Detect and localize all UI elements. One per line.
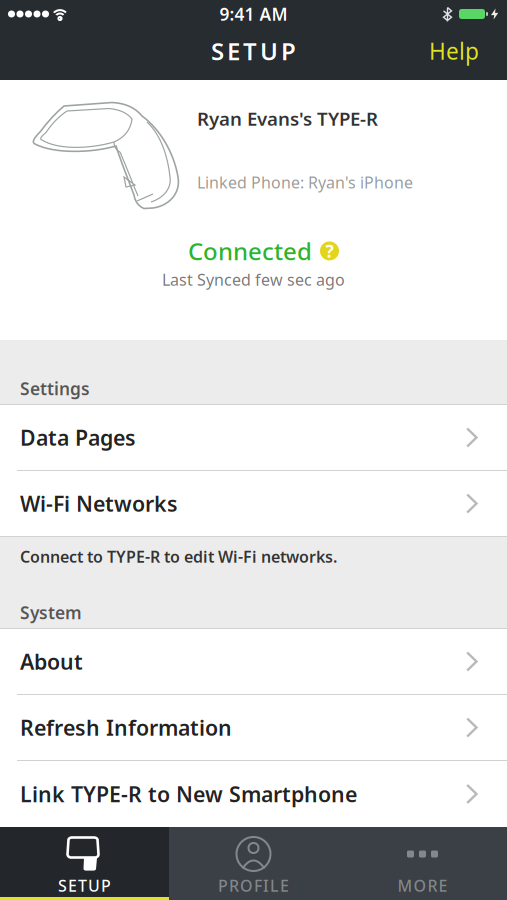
staticText: Refresh Information [20,713,232,742]
staticText: About [20,647,83,676]
staticText: Help [429,36,479,66]
button[interactable]: Help [429,36,507,66]
staticText: System [20,601,82,624]
button[interactable]: Link TYPE-R to New Smartphone [0,761,507,827]
staticText: Last Synced few sec ago [162,269,345,290]
staticText: Wi-Fi Networks [20,489,178,518]
button[interactable]: Refresh Information [0,695,507,760]
button[interactable]: Connected [178,235,329,267]
button[interactable]: SETUP [0,827,169,900]
button[interactable]: MORE [338,827,507,900]
staticText: PROFILE [218,875,289,896]
button[interactable]: About [0,629,507,694]
button[interactable]: PROFILE [169,827,338,900]
staticText: SETUP [211,35,296,67]
staticText: Connected [188,235,312,267]
staticText: Connect to TYPE-R to edit Wi-Fi networks… [20,546,337,567]
staticText: Data Pages [20,423,136,452]
staticText: MORE [397,875,447,896]
button[interactable]: Data Pages [0,405,507,470]
staticText: SETUP [58,875,111,896]
staticText: Linked Phone: Ryan's iPhone [197,172,413,193]
staticText: Ryan Evans's TYPE-R [197,106,378,131]
staticText: Link TYPE-R to New Smartphone [20,780,357,808]
staticText: 9:41 AM [219,2,287,25]
button[interactable]: Wi-Fi Networks [0,471,507,536]
staticText: ? [325,239,333,262]
staticText: Settings [20,377,90,400]
